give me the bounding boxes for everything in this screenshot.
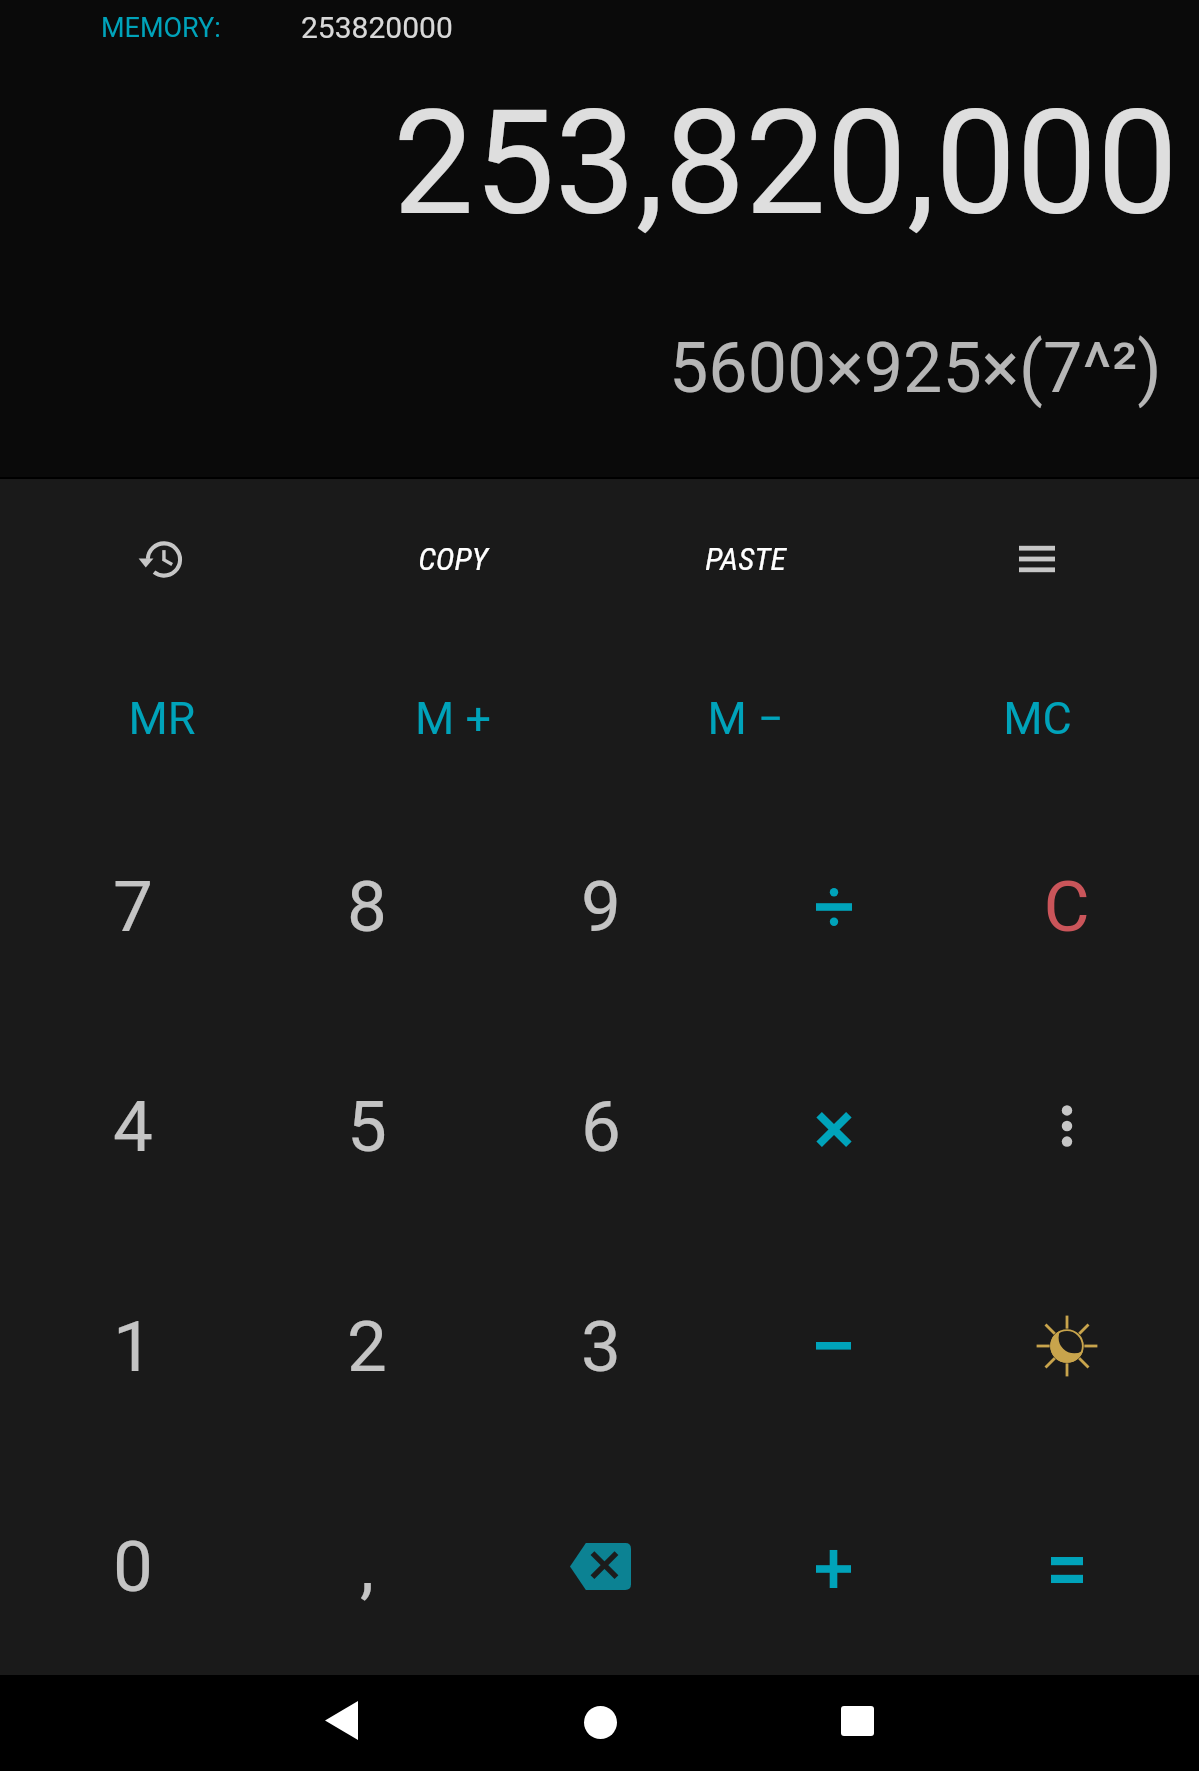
button[interactable]: Recents bbox=[807, 1673, 907, 1769]
button[interactable]: 4 bbox=[16, 1066, 250, 1186]
button[interactable]: Home bbox=[550, 1674, 650, 1770]
button[interactable]: 2 bbox=[250, 1286, 484, 1406]
button[interactable] bbox=[717, 1506, 950, 1626]
button[interactable]: Backspace bbox=[484, 1506, 717, 1626]
button[interactable] bbox=[717, 1066, 950, 1186]
button[interactable] bbox=[717, 1286, 950, 1406]
staticText: , bbox=[360, 1525, 374, 1608]
staticText: 0 bbox=[113, 1525, 153, 1608]
staticText: COPY bbox=[418, 540, 488, 578]
button[interactable] bbox=[717, 846, 950, 966]
staticText: MR bbox=[128, 692, 196, 745]
button[interactable] bbox=[950, 1506, 1183, 1626]
staticText: 7 bbox=[113, 865, 153, 948]
staticText: M − bbox=[707, 692, 784, 745]
staticText: 3 bbox=[581, 1305, 621, 1388]
staticText: 5 bbox=[347, 1085, 387, 1168]
button[interactable]: 0 bbox=[16, 1506, 250, 1626]
button[interactable]: 3 bbox=[484, 1286, 717, 1406]
staticText: 253820000 bbox=[301, 10, 453, 45]
button[interactable]: 5 bbox=[250, 1066, 484, 1186]
button[interactable]: Toggle theme bbox=[950, 1286, 1183, 1406]
button[interactable]: 9 bbox=[484, 846, 717, 966]
staticText: 5600×925×(7^²) bbox=[669, 327, 1162, 409]
button[interactable]: , bbox=[250, 1506, 484, 1626]
staticText: MEMORY: bbox=[101, 12, 221, 44]
button[interactable]: MC bbox=[891, 658, 1183, 778]
button[interactable]: 8 bbox=[250, 846, 484, 966]
button[interactable]: 7 bbox=[16, 846, 250, 966]
button[interactable]: C bbox=[950, 846, 1183, 966]
staticText: 1 bbox=[113, 1305, 153, 1388]
button[interactable]: PASTE bbox=[599, 499, 891, 619]
staticText: 6 bbox=[581, 1085, 621, 1168]
button[interactable]: MR bbox=[16, 658, 307, 778]
staticText: 9 bbox=[581, 865, 621, 948]
button[interactable]: Menu bbox=[891, 499, 1183, 619]
staticText: C bbox=[1043, 865, 1090, 948]
staticText: 4 bbox=[113, 1085, 153, 1168]
button[interactable]: COPY bbox=[307, 499, 599, 619]
button[interactable]: History bbox=[16, 499, 307, 619]
staticText: 2 bbox=[347, 1305, 387, 1388]
staticText: MC bbox=[1003, 692, 1072, 745]
staticText: 8 bbox=[347, 865, 387, 948]
staticText: M + bbox=[415, 692, 491, 745]
staticText: PASTE bbox=[705, 540, 786, 578]
button[interactable]: M + bbox=[307, 658, 599, 778]
button[interactable]: More options bbox=[950, 1066, 1183, 1186]
button[interactable]: M − bbox=[599, 658, 891, 778]
button[interactable]: Back bbox=[291, 1672, 391, 1768]
button[interactable]: 1 bbox=[16, 1286, 250, 1406]
staticText: 253,820,000 bbox=[393, 79, 1179, 248]
button[interactable]: 6 bbox=[484, 1066, 717, 1186]
